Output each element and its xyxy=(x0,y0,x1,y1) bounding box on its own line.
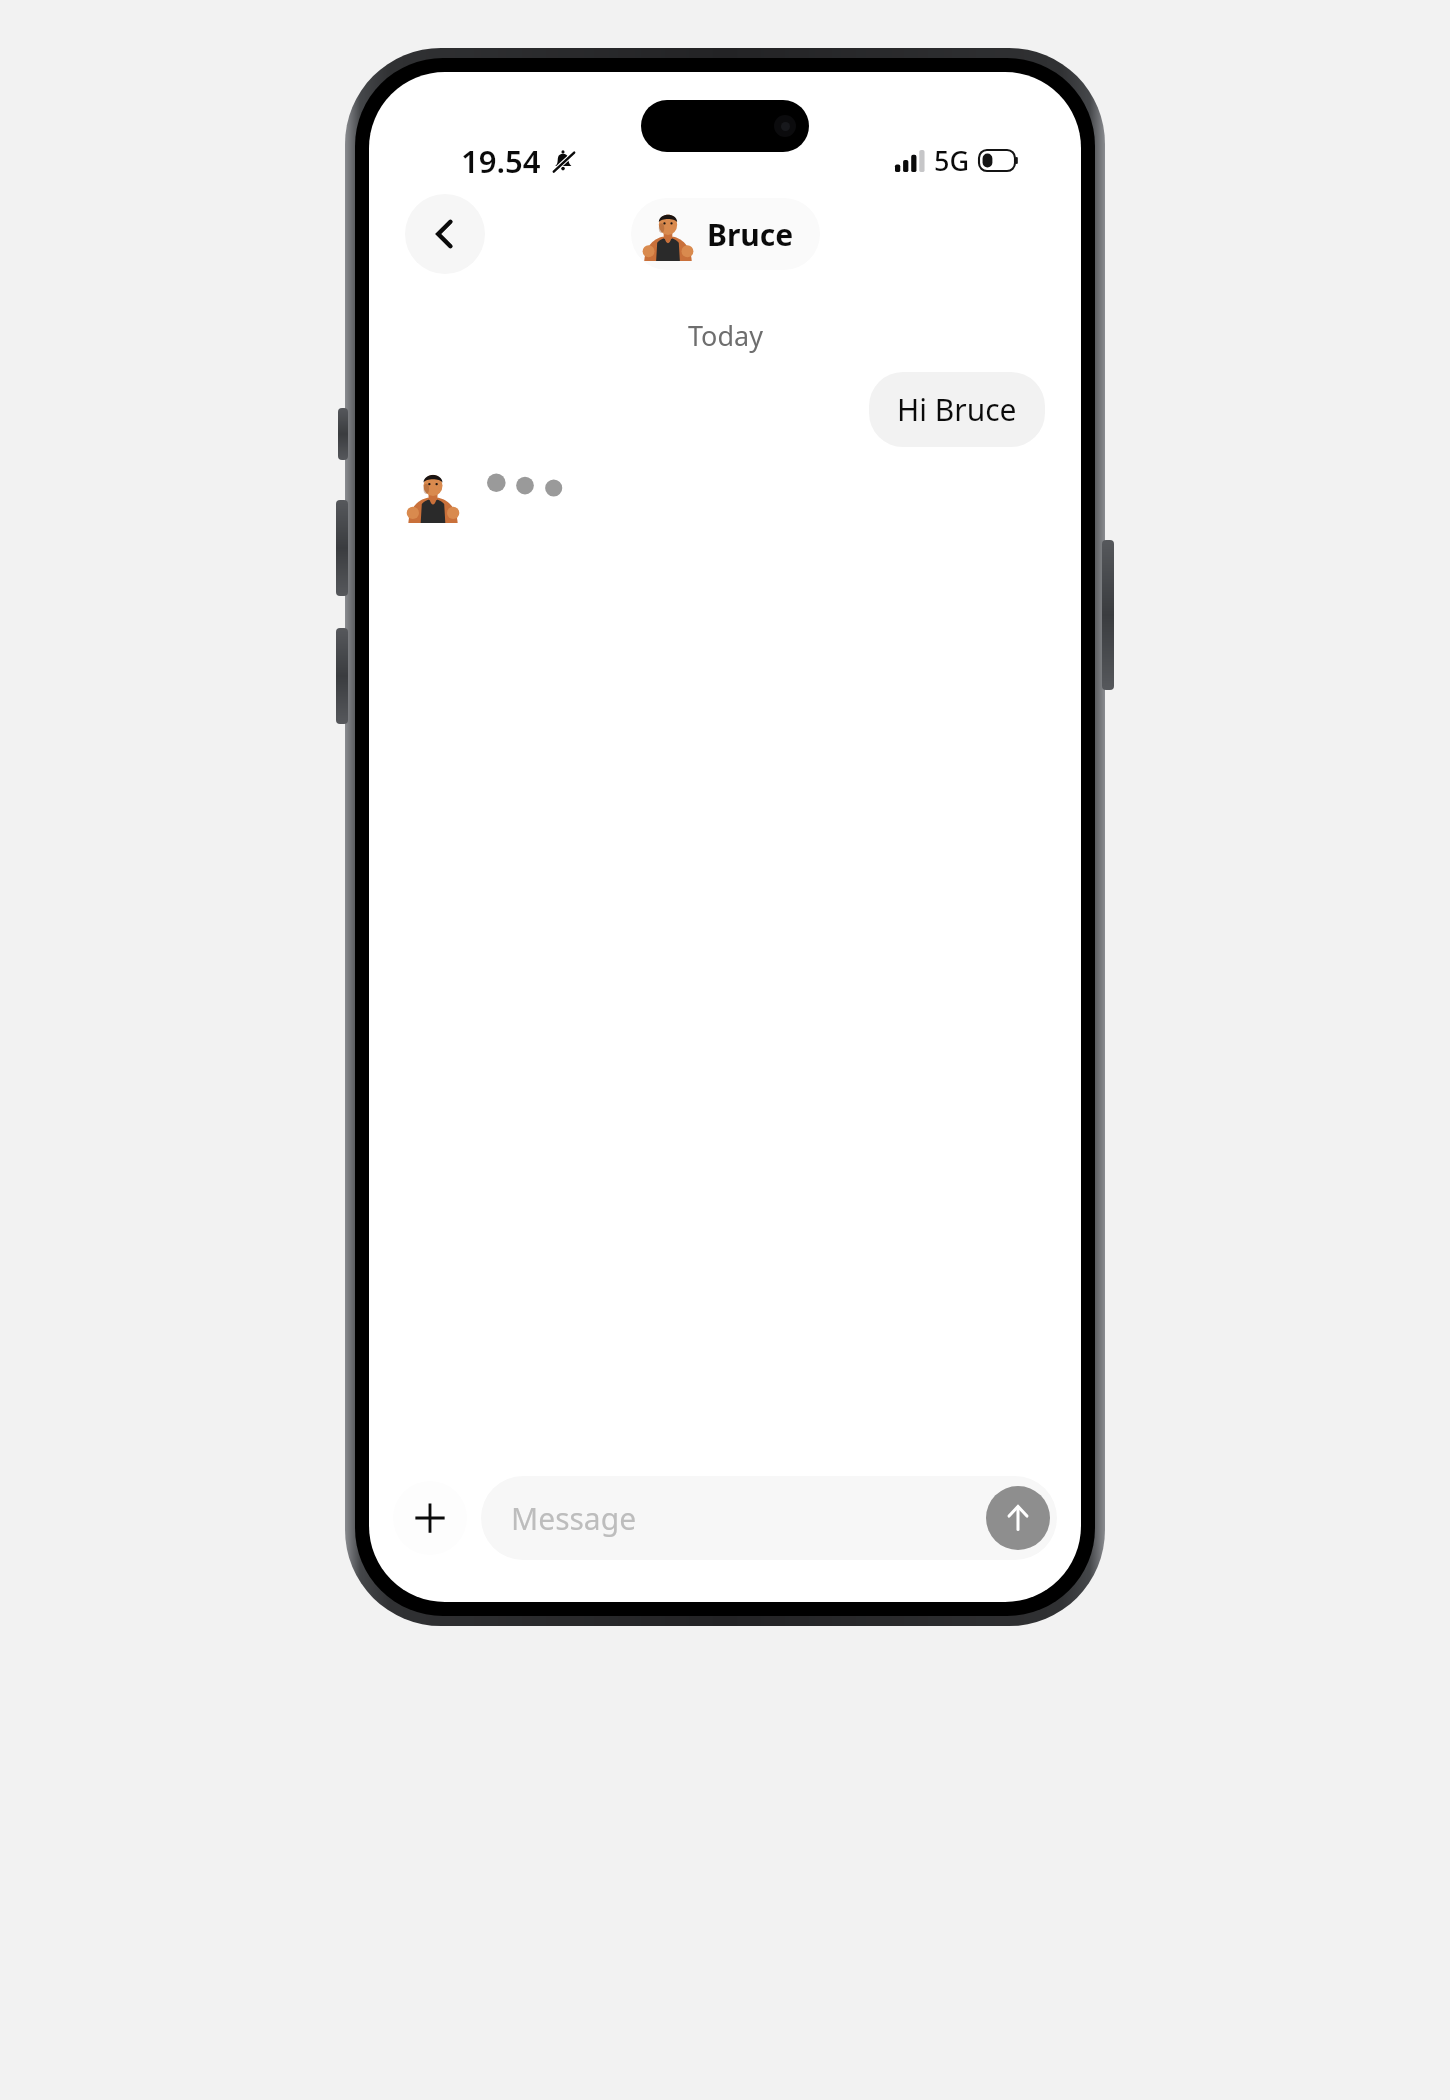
button[interactable]: Hi Bruce xyxy=(869,372,1045,447)
button[interactable]: Send xyxy=(986,1486,1050,1550)
button[interactable]: Message xyxy=(481,1476,1057,1560)
staticText: 19.54 xyxy=(461,140,541,182)
button[interactable]: Add attachment xyxy=(393,1481,467,1555)
staticText: Bruce xyxy=(707,214,794,255)
staticText: 5G xyxy=(934,142,970,179)
staticText: Hi Bruce xyxy=(897,389,1017,430)
staticText: Message xyxy=(511,1498,637,1539)
staticText: Today xyxy=(688,317,763,354)
button[interactable]: Bruce xyxy=(631,198,820,270)
button[interactable]: Back xyxy=(405,194,485,274)
